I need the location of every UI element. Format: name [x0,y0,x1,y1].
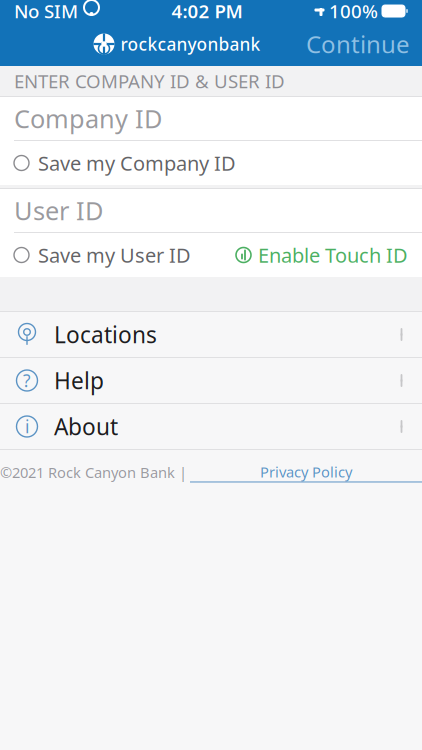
staticText: Save my Company ID [38,150,236,176]
button[interactable]: Save my Company ID [14,140,236,186]
staticText: i [25,415,29,438]
staticText: No SIM [14,0,78,23]
staticText: ? [23,369,31,392]
button[interactable]: ? [0,358,422,404]
staticText: About [54,411,118,441]
staticText: Save my User ID [38,242,191,268]
staticText: 100% [329,0,378,23]
button[interactable]: Locations [0,312,422,358]
button[interactable]: Continue [294,24,422,64]
staticText: 4:02 PM [171,0,242,23]
staticText: User ID [14,194,103,227]
staticText: Help [54,365,104,395]
staticText: Locations [54,319,157,349]
button[interactable]: i [0,404,422,450]
staticText: Enable Touch ID [258,242,408,268]
button[interactable]: Save my User ID [14,232,191,278]
staticText: ©2021 Rock Canyon Bank | [0,462,187,482]
staticText: rockcanyonbank [120,32,260,55]
staticText: Company ID [14,102,162,135]
staticText: Privacy Policy [260,462,352,481]
button[interactable]: Enable Touch ID [235,232,408,278]
staticText: ENTER COMPANY ID & USER ID [14,69,285,93]
button[interactable]: Privacy Policy [190,462,422,482]
staticText: Continue [306,28,410,60]
